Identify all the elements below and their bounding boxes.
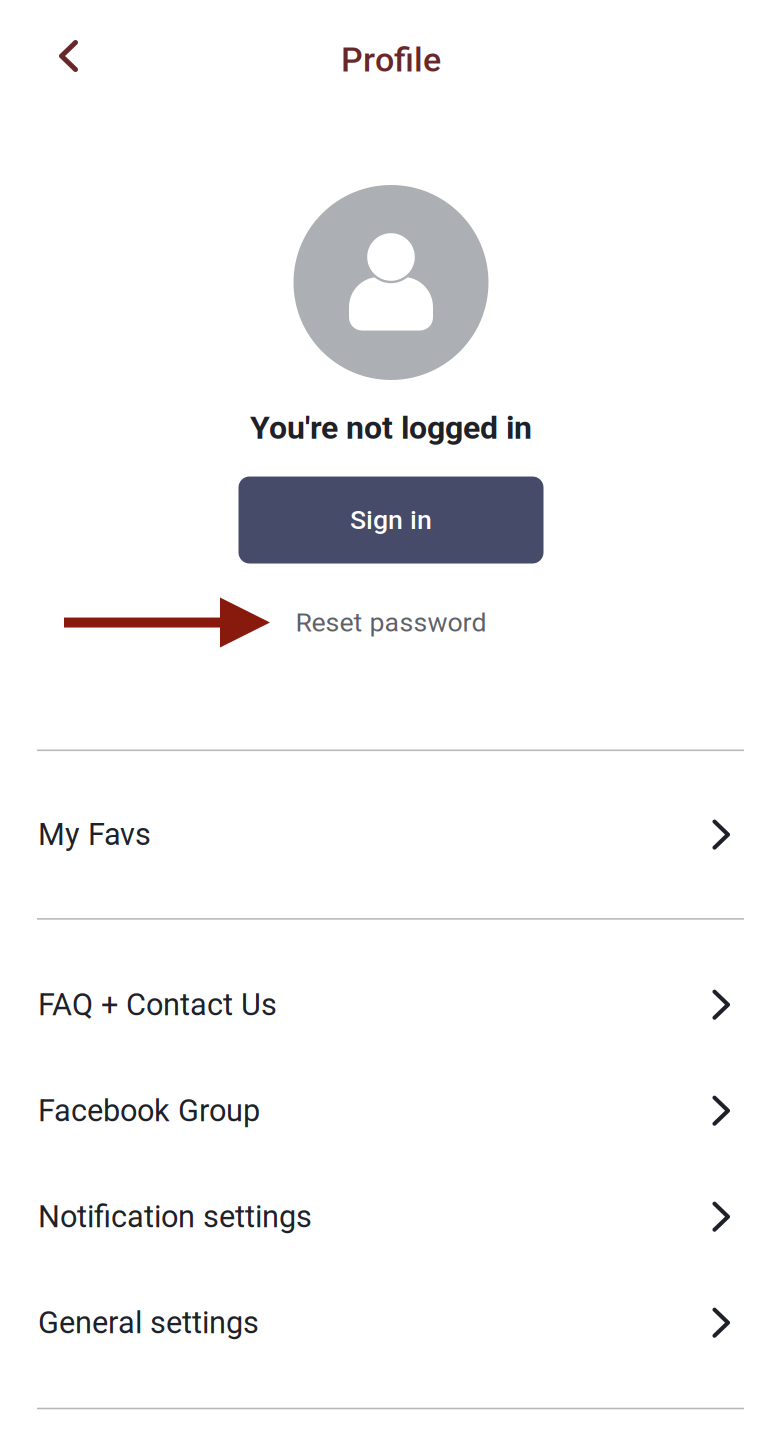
staticText: Reset password bbox=[295, 607, 486, 638]
staticText: FAQ + Contact Us bbox=[38, 987, 277, 1023]
button[interactable]: Reset password bbox=[292, 607, 483, 638]
button[interactable]: Back bbox=[0, 22, 108, 94]
staticText: Notification settings bbox=[38, 1199, 312, 1235]
staticText: You're not logged in bbox=[250, 409, 532, 446]
staticText: My Favs bbox=[38, 817, 151, 852]
button[interactable]: FAQ + Contact Us bbox=[0, 952, 776, 1058]
staticText: Profile bbox=[341, 40, 441, 80]
staticText: General settings bbox=[38, 1305, 259, 1341]
staticText: Sign in bbox=[350, 504, 432, 536]
button[interactable]: General settings bbox=[0, 1270, 776, 1376]
button[interactable]: Facebook Group bbox=[0, 1058, 776, 1164]
staticText: Facebook Group bbox=[38, 1093, 260, 1129]
button[interactable]: Sign in bbox=[238, 476, 543, 563]
button[interactable]: Notification settings bbox=[0, 1164, 776, 1270]
button[interactable]: My Favs bbox=[0, 751, 776, 918]
